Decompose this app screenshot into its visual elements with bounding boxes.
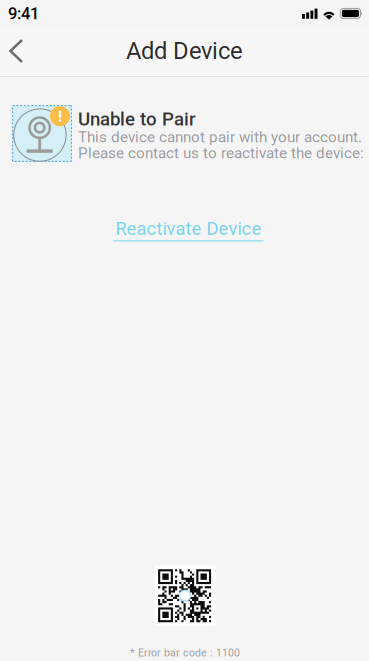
staticText: 9:41 (8, 4, 39, 23)
staticText: This device cannot pair with your accoun… (78, 128, 362, 146)
staticText: Please contact us to reactivate the devi… (78, 144, 364, 162)
staticText: Reactivate Device (115, 218, 261, 239)
staticText: Unable to Pair (78, 108, 196, 130)
button[interactable]: Reactivate Device (105, 209, 263, 241)
button[interactable]: Back (0, 29, 38, 73)
staticText: Add Device (126, 37, 243, 65)
staticText: * Error bar code : 1100 (130, 647, 240, 659)
